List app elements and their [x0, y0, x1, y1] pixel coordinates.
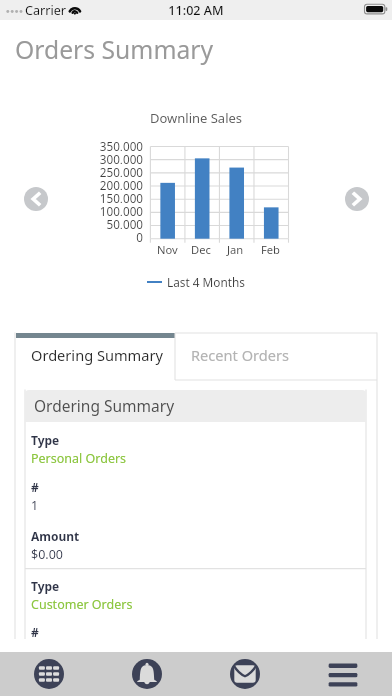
staticText: Dec: [191, 242, 211, 257]
staticText: 250,000: [86, 164, 143, 177]
staticText: 11:02 AM: [0, 2, 392, 19]
staticText: 300,000: [86, 151, 143, 164]
staticText: Recent Orders: [191, 345, 289, 365]
staticText: Downline Sales: [0, 109, 392, 127]
staticText: Amount: [31, 528, 80, 544]
button[interactable]: Next: [345, 187, 369, 211]
staticText: Type: [31, 432, 60, 448]
staticText: 200,000: [86, 177, 143, 190]
staticText: Orders Summary: [15, 33, 214, 67]
staticText: Jan: [227, 242, 244, 257]
button[interactable]: Notifications: [98, 652, 196, 696]
staticText: #: [31, 624, 39, 640]
staticText: Last 4 Months: [167, 274, 245, 290]
button[interactable]: Messages: [196, 652, 294, 696]
staticText: #: [31, 479, 39, 495]
button[interactable]: Dashboard: [0, 652, 98, 696]
staticText: $0.00: [31, 546, 63, 563]
staticText: 150,000: [86, 190, 143, 203]
button[interactable]: Previous: [24, 187, 48, 211]
staticText: Feb: [261, 242, 280, 257]
staticText: Ordering Summary: [34, 395, 175, 416]
staticText: 1: [31, 497, 39, 514]
staticText: Nov: [157, 242, 178, 257]
staticText: Ordering Summary: [31, 345, 163, 365]
staticText: Customer Orders: [31, 596, 133, 613]
staticText: 50,000: [86, 216, 143, 229]
button[interactable]: Recent Orders: [175, 333, 377, 380]
staticText: 0: [86, 229, 143, 242]
staticText: 100,000: [86, 203, 143, 216]
staticText: 350,000: [86, 138, 143, 151]
button[interactable]: Menu: [294, 652, 392, 696]
staticText: Type: [31, 578, 60, 594]
staticText: Personal Orders: [31, 450, 127, 467]
button[interactable]: Ordering Summary: [16, 333, 175, 379]
staticText: Carrier: [25, 2, 66, 19]
